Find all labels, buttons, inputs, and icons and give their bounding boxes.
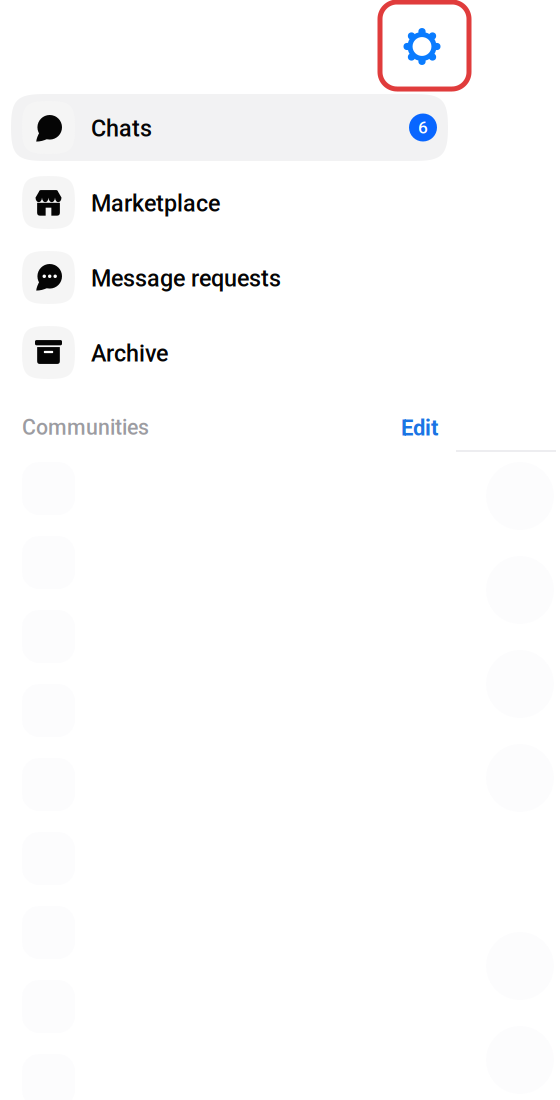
- staticText: Archive: [91, 340, 168, 367]
- button[interactable]: Edit: [401, 415, 438, 441]
- staticText: Communities: [22, 415, 149, 440]
- button[interactable]: Chats: [11, 94, 448, 161]
- staticText: Message requests: [91, 265, 281, 292]
- staticText: Marketplace: [91, 190, 220, 217]
- staticText: 6: [418, 117, 428, 138]
- button[interactable]: Marketplace: [11, 169, 448, 236]
- staticText: Edit: [401, 415, 438, 441]
- button[interactable]: Settings: [376, 3, 468, 90]
- button[interactable]: Archive: [11, 319, 448, 386]
- staticText: Chats: [91, 115, 152, 142]
- button[interactable]: Message requests: [11, 244, 448, 311]
